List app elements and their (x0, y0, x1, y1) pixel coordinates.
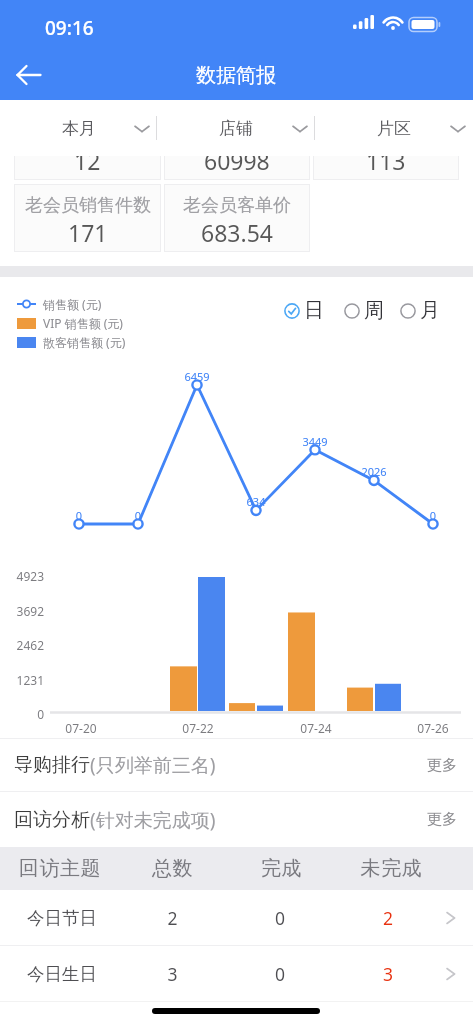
staticText: 4923 (0, 568, 44, 584)
staticText: VIP 销售额 (元) (43, 315, 123, 331)
button[interactable]: 今日生日 (0, 946, 473, 1001)
staticText: 店铺 (219, 118, 253, 139)
button[interactable]: 周 (344, 298, 384, 323)
button[interactable]: Back (11, 57, 47, 93)
staticText: 数据简报 (196, 63, 276, 88)
staticText: 171 (68, 217, 108, 248)
staticText: 总数 (120, 856, 225, 881)
staticText: 导购排行 (14, 753, 90, 777)
staticText: 0 (0, 706, 44, 722)
staticText: (只列举前三名) (90, 752, 216, 778)
button[interactable]: 月 (400, 298, 440, 323)
staticText: 本月 (62, 118, 96, 139)
staticText: 销售额 (元) (43, 296, 102, 312)
staticText: 3449 (295, 434, 335, 449)
staticText: 07-22 (168, 720, 228, 736)
button[interactable]: 今日节日 (0, 890, 473, 945)
staticText: 113 (366, 145, 406, 176)
staticText: 60998 (204, 145, 270, 176)
staticText: 0 (118, 508, 158, 523)
staticText: 2 (339, 906, 437, 930)
staticText: 07-20 (51, 720, 111, 736)
staticText: 0 (221, 906, 339, 930)
staticText: 月 (420, 298, 440, 323)
button[interactable]: 老会员客单价 (164, 184, 310, 252)
staticText: 0 (413, 508, 453, 523)
staticText: 2026 (354, 464, 394, 479)
button[interactable]: 老会员销售件数 (14, 184, 161, 252)
staticText: 客单价 (61, 122, 115, 145)
staticText: 日 (304, 298, 324, 323)
button[interactable]: 导购排行 (0, 739, 473, 791)
staticText: 3 (339, 962, 437, 986)
button[interactable]: 本月 (0, 100, 157, 156)
staticText: 1231 (0, 672, 44, 688)
staticText: 片区 (377, 118, 411, 139)
staticText: 更多 (427, 756, 457, 775)
staticText: 件数 (368, 122, 404, 145)
staticText: 周 (364, 298, 384, 323)
button[interactable]: 日 (284, 298, 324, 323)
staticText: 散客销售额 (元) (43, 334, 126, 350)
button[interactable]: 客单价 (14, 112, 161, 180)
staticText: (针对未完成项) (90, 807, 216, 833)
staticText: 完成 (225, 856, 338, 881)
staticText: 回访分析 (14, 808, 90, 832)
staticText: 0 (59, 508, 99, 523)
staticText: 634 (236, 494, 276, 509)
staticText: 12 (74, 145, 101, 176)
staticText: 3692 (0, 603, 44, 619)
staticText: 2462 (0, 637, 44, 653)
staticText: 老会员客单价 (183, 194, 291, 217)
button[interactable]: 回访分析 (0, 792, 473, 847)
staticText: 回访主题 (0, 856, 120, 881)
staticText: 6459 (177, 369, 217, 384)
staticText: 未完成 (338, 856, 445, 881)
button[interactable]: 销售额 (164, 112, 310, 180)
staticText: 销售额 (210, 122, 264, 145)
staticText: 09:16 (45, 15, 94, 41)
staticText: 07-24 (286, 720, 346, 736)
staticText: 2 (124, 906, 221, 930)
staticText: 0 (221, 962, 339, 986)
staticText: 683.54 (201, 217, 273, 248)
staticText: 更多 (427, 810, 457, 829)
staticText: 3 (124, 962, 221, 986)
button[interactable]: 店铺 (157, 100, 315, 156)
staticText: 今日节日 (0, 907, 124, 929)
staticText: 今日生日 (0, 963, 124, 985)
button[interactable]: 件数 (313, 112, 459, 180)
staticText: 老会员销售件数 (25, 194, 151, 217)
staticText: 07-26 (403, 720, 463, 736)
button[interactable]: 片区 (315, 100, 473, 156)
